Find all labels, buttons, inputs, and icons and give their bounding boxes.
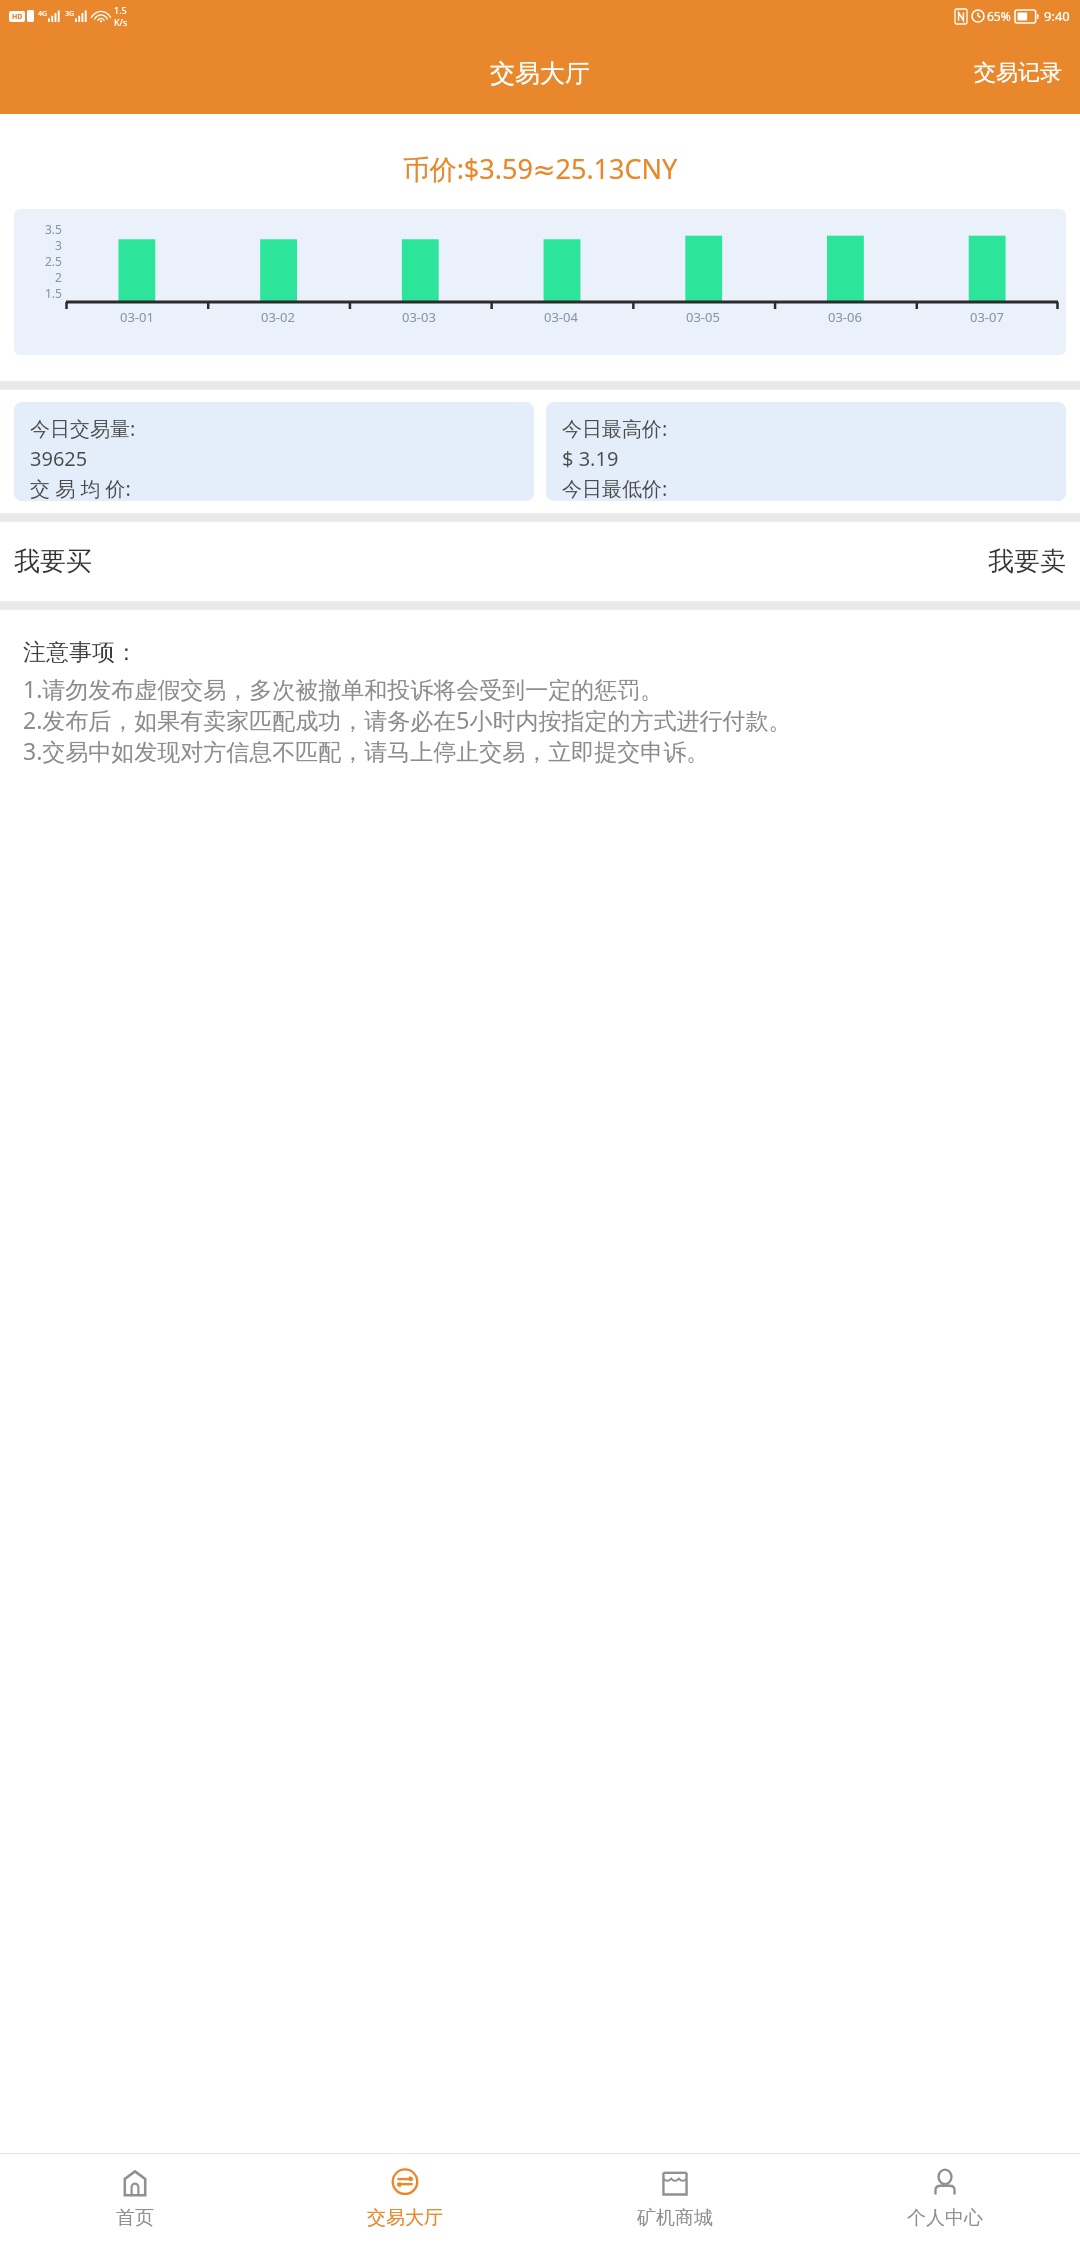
button[interactable]: 我要买 [0,522,540,601]
staticText: HD [12,12,23,22]
staticText: 首页 [116,2206,154,2230]
staticText: 今日最低价: [562,475,668,501]
staticText: 2.发布后，如果有卖家匹配成功，请务必在5小时内按指定的方式进行付款。 [23,704,792,735]
staticText: 39625 [30,445,88,472]
staticText: 交 易 均 价: [30,475,131,501]
button[interactable]: 个人中心 [810,2154,1080,2244]
staticText: 我要卖 [988,545,1066,578]
button[interactable]: 交易大厅 [270,2154,540,2244]
staticText: 交易记录 [974,59,1062,87]
staticText: 03-04 [544,308,578,326]
staticText: 3 [55,237,62,253]
staticText: 我要买 [14,545,92,578]
staticText: 03-02 [261,308,295,326]
staticText: 3.交易中如发现对方信息不匹配，请马上停止交易，立即提交申诉。 [23,735,710,766]
button[interactable]: 今日最高价: [546,402,1066,501]
staticText: 3G [65,9,75,19]
other: 矿机商城 [658,2166,692,2200]
staticText: 03-06 [828,308,862,326]
other: 个人中心 [928,2166,962,2200]
staticText: 1.5 [45,285,62,300]
staticText: 1.请勿发布虚假交易，多次被撤单和投诉将会受到一定的惩罚。 [23,673,664,704]
staticText: 3.5 [45,221,62,237]
staticText: 03-03 [402,308,436,326]
button[interactable]: 今日交易量: [14,402,534,501]
staticText: 交易大厅 [367,2206,443,2230]
staticText: 今日最高价: [562,415,668,442]
button[interactable]: 矿机商城 [540,2154,810,2244]
staticText: 个人中心 [907,2206,983,2230]
button[interactable]: 首页 [0,2154,270,2244]
staticText: 今日交易量: [30,415,136,442]
button[interactable]: 交易记录 [956,45,1080,101]
staticText: 币价:$3.59≈25.13CNY [0,150,1080,187]
other: 首页 [118,2166,152,2200]
staticText: 03-07 [970,308,1004,326]
staticText: 2.5 [45,253,62,269]
staticText: 1.5 [114,4,127,16]
staticText: 2 [55,269,62,285]
other: 交易大厅 [388,2166,422,2200]
staticText: 矿机商城 [637,2206,713,2230]
staticText: 65% [987,8,1011,24]
staticText: 03-05 [686,308,720,326]
staticText: 交易大厅 [490,58,590,89]
staticText: 注意事项： [23,638,138,667]
button[interactable]: 我要卖 [540,522,1080,601]
staticText: 9:40 [1044,7,1070,25]
staticText: 03-01 [120,308,154,326]
staticText: K/s [114,16,128,28]
staticText: $ 3.19 [562,445,619,472]
staticText: 4G [38,9,48,19]
